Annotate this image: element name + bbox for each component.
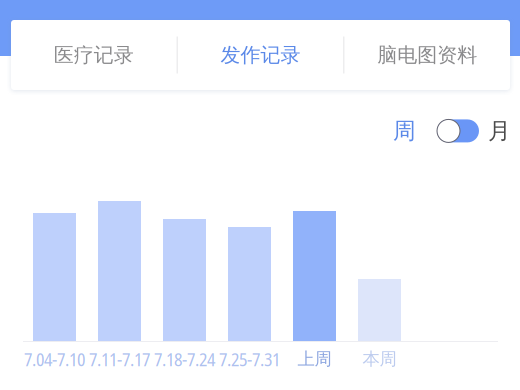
staticText: 上周: [297, 348, 331, 370]
button[interactable]: 医疗记录: [11, 20, 177, 90]
staticText: 7.18-7.24: [154, 346, 215, 372]
staticText: 医疗记录: [54, 43, 134, 67]
staticText: 7.11-7.17: [89, 346, 150, 372]
staticText: 发作记录: [220, 43, 300, 67]
staticText: 7.25-7.31: [219, 346, 280, 372]
staticText: 周: [393, 117, 416, 145]
button[interactable]: 发作记录: [178, 20, 343, 90]
staticText: 脑电图资料: [377, 43, 477, 67]
staticText: 7.04-7.10: [24, 346, 85, 372]
button[interactable]: Switch between week and month view: [437, 119, 479, 142]
button[interactable]: 脑电图资料: [344, 20, 510, 90]
staticText: 本周: [362, 348, 396, 370]
staticText: 月: [488, 117, 511, 145]
